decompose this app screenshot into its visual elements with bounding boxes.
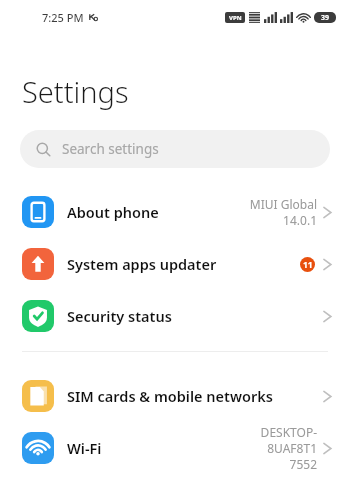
button[interactable]: System apps updater xyxy=(0,238,350,290)
button[interactable]: About phone xyxy=(0,186,350,238)
staticText: Wi-Fi xyxy=(67,438,102,458)
other: Open SIM cards & mobile networks xyxy=(323,389,332,404)
staticText: 14.0.1 xyxy=(283,212,317,228)
staticText: Search settings xyxy=(62,140,159,158)
button[interactable]: SIM cards & mobile networks xyxy=(0,370,350,422)
other: Open System apps updater xyxy=(323,257,332,272)
staticText: MIUI Global xyxy=(249,196,317,212)
staticText: 11 xyxy=(303,259,313,271)
button[interactable]: Wi-Fi xyxy=(0,422,350,474)
staticText: 39 xyxy=(321,13,330,23)
staticText: VPN xyxy=(229,14,242,22)
button[interactable]: Security status xyxy=(0,290,350,342)
staticText: 7:25 PM xyxy=(42,10,84,25)
staticText: SIM cards & mobile networks xyxy=(67,386,273,406)
other: Open Wi-Fi xyxy=(323,441,332,456)
other: Open Security status xyxy=(323,309,332,324)
staticText: DESKTOP- xyxy=(260,424,317,440)
other: Open About phone xyxy=(323,205,332,220)
staticText: About phone xyxy=(67,202,159,222)
staticText: Security status xyxy=(67,306,172,326)
staticText: 7552 xyxy=(289,456,317,472)
staticText: Settings xyxy=(22,72,129,111)
staticText: System apps updater xyxy=(67,254,217,274)
staticText: 8UAF8T1 xyxy=(267,440,317,456)
button[interactable]: Search settings xyxy=(20,130,330,168)
